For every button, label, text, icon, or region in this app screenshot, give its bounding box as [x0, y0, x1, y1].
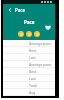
button[interactable]: Stat	[26, 31, 32, 37]
button[interactable]: Stat	[18, 31, 24, 37]
button[interactable]: Best	[3, 47, 55, 53]
button[interactable]: Average pace	[3, 40, 55, 46]
staticText: Pace	[24, 19, 35, 25]
staticText: Average pace	[29, 62, 52, 67]
button[interactable]: Best	[3, 68, 55, 74]
button[interactable]: Last	[3, 75, 55, 81]
staticText: Last	[29, 76, 36, 81]
staticText: Avg	[29, 90, 36, 95]
staticText: Best	[29, 48, 37, 53]
button[interactable]: Pace	[15, 7, 26, 13]
button[interactable]: Total	[3, 82, 55, 88]
button[interactable]: Avg	[3, 89, 55, 95]
button[interactable]: Back	[5, 5, 14, 14]
staticText: Average pace	[29, 41, 52, 46]
staticText: Best	[29, 69, 37, 74]
button[interactable]: Stat	[34, 31, 40, 37]
button[interactable]: Favorite	[43, 23, 52, 32]
staticText: Total	[29, 83, 37, 88]
button[interactable]: Average pace	[3, 61, 55, 67]
staticText: Last	[29, 55, 36, 60]
button[interactable]: Last	[3, 54, 55, 60]
